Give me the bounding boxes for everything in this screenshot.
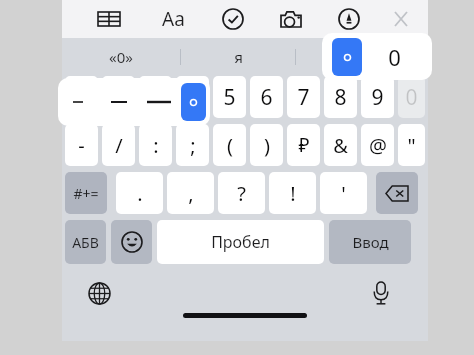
staticText: - <box>78 132 85 159</box>
staticText: Ввод <box>352 232 389 252</box>
staticText: Aa <box>162 6 185 32</box>
button[interactable]: & <box>324 124 357 166</box>
staticText: & <box>333 132 348 159</box>
button[interactable]: Bullet <box>181 83 206 121</box>
staticText: ( <box>227 132 233 159</box>
button[interactable]: ( <box>213 124 246 166</box>
button[interactable]: @ <box>361 124 394 166</box>
button[interactable]: Пробел <box>157 220 324 264</box>
button[interactable]: АБВ <box>65 220 106 264</box>
button[interactable]: : <box>139 124 172 166</box>
staticText: АБВ <box>72 233 99 252</box>
button[interactable]: Emoji <box>111 220 152 264</box>
button[interactable]: Degree <box>332 38 362 76</box>
button[interactable]: " <box>398 124 425 166</box>
staticText: 2 <box>112 83 125 112</box>
staticText: «0» <box>109 47 133 67</box>
button[interactable]: ; <box>176 124 209 166</box>
staticText: Пробел <box>211 231 270 253</box>
button[interactable]: ₽ <box>287 124 320 166</box>
staticText: 1 <box>75 83 88 112</box>
button[interactable] <box>105 83 133 121</box>
button[interactable] <box>296 42 414 72</box>
staticText: 0 <box>388 42 401 72</box>
staticText: " <box>407 132 416 159</box>
staticText: @ <box>369 132 387 159</box>
button[interactable]: Dictation <box>366 278 396 308</box>
staticText: ) <box>264 132 270 159</box>
button[interactable]: . <box>116 172 163 214</box>
button[interactable]: Switch keyboard <box>84 278 114 308</box>
button[interactable]: 4 <box>176 76 209 118</box>
button[interactable]: 7 <box>287 76 320 118</box>
button[interactable] <box>145 83 173 121</box>
button[interactable]: Backspace <box>376 172 418 214</box>
button[interactable]: - <box>65 124 98 166</box>
staticText: : <box>153 132 159 159</box>
button[interactable]: ? <box>218 172 265 214</box>
staticText: 0 <box>405 83 418 112</box>
staticText: / <box>115 132 123 159</box>
staticText: 3 <box>149 83 162 112</box>
button[interactable]: Markup <box>336 6 362 32</box>
button[interactable]: 5 <box>213 76 246 118</box>
button[interactable]: Ввод <box>329 220 411 264</box>
button[interactable]: 0 <box>398 76 425 118</box>
button[interactable]: #+= <box>65 172 107 214</box>
staticText: 8 <box>334 83 347 112</box>
button[interactable]: Close <box>392 6 410 32</box>
staticText: 6 <box>260 83 273 112</box>
staticText: . <box>137 180 143 207</box>
button[interactable]: ) <box>250 124 283 166</box>
staticText: 4 <box>186 83 199 112</box>
staticText: #+= <box>73 184 99 203</box>
button[interactable]: 3 <box>139 76 172 118</box>
staticText: ' <box>341 180 346 207</box>
button[interactable]: Aa <box>156 6 190 32</box>
staticText: ; <box>190 132 196 159</box>
button[interactable]: , <box>167 172 214 214</box>
button[interactable]: 6 <box>250 76 283 118</box>
button[interactable]: я <box>181 42 295 72</box>
button[interactable]: 1 <box>65 76 98 118</box>
staticText: я <box>234 47 243 67</box>
staticText: 7 <box>297 83 310 112</box>
button[interactable]: 0 <box>380 38 408 76</box>
button[interactable]: ! <box>269 172 316 214</box>
staticText: , <box>188 180 194 207</box>
button[interactable]: «0» <box>62 42 180 72</box>
button[interactable]: Checklist <box>220 6 246 32</box>
button[interactable]: ' <box>320 172 367 214</box>
button[interactable]: Table <box>96 6 122 32</box>
staticText: 5 <box>223 83 236 112</box>
staticText: ? <box>237 180 246 207</box>
button[interactable] <box>64 83 92 121</box>
button[interactable]: 9 <box>361 76 394 118</box>
button[interactable]: 2 <box>102 76 135 118</box>
button[interactable]: / <box>102 124 135 166</box>
button[interactable]: Camera <box>278 6 304 32</box>
button[interactable]: 8 <box>324 76 357 118</box>
staticText: ₽ <box>298 132 310 158</box>
staticText: 9 <box>371 83 384 112</box>
staticText: ! <box>290 180 296 207</box>
